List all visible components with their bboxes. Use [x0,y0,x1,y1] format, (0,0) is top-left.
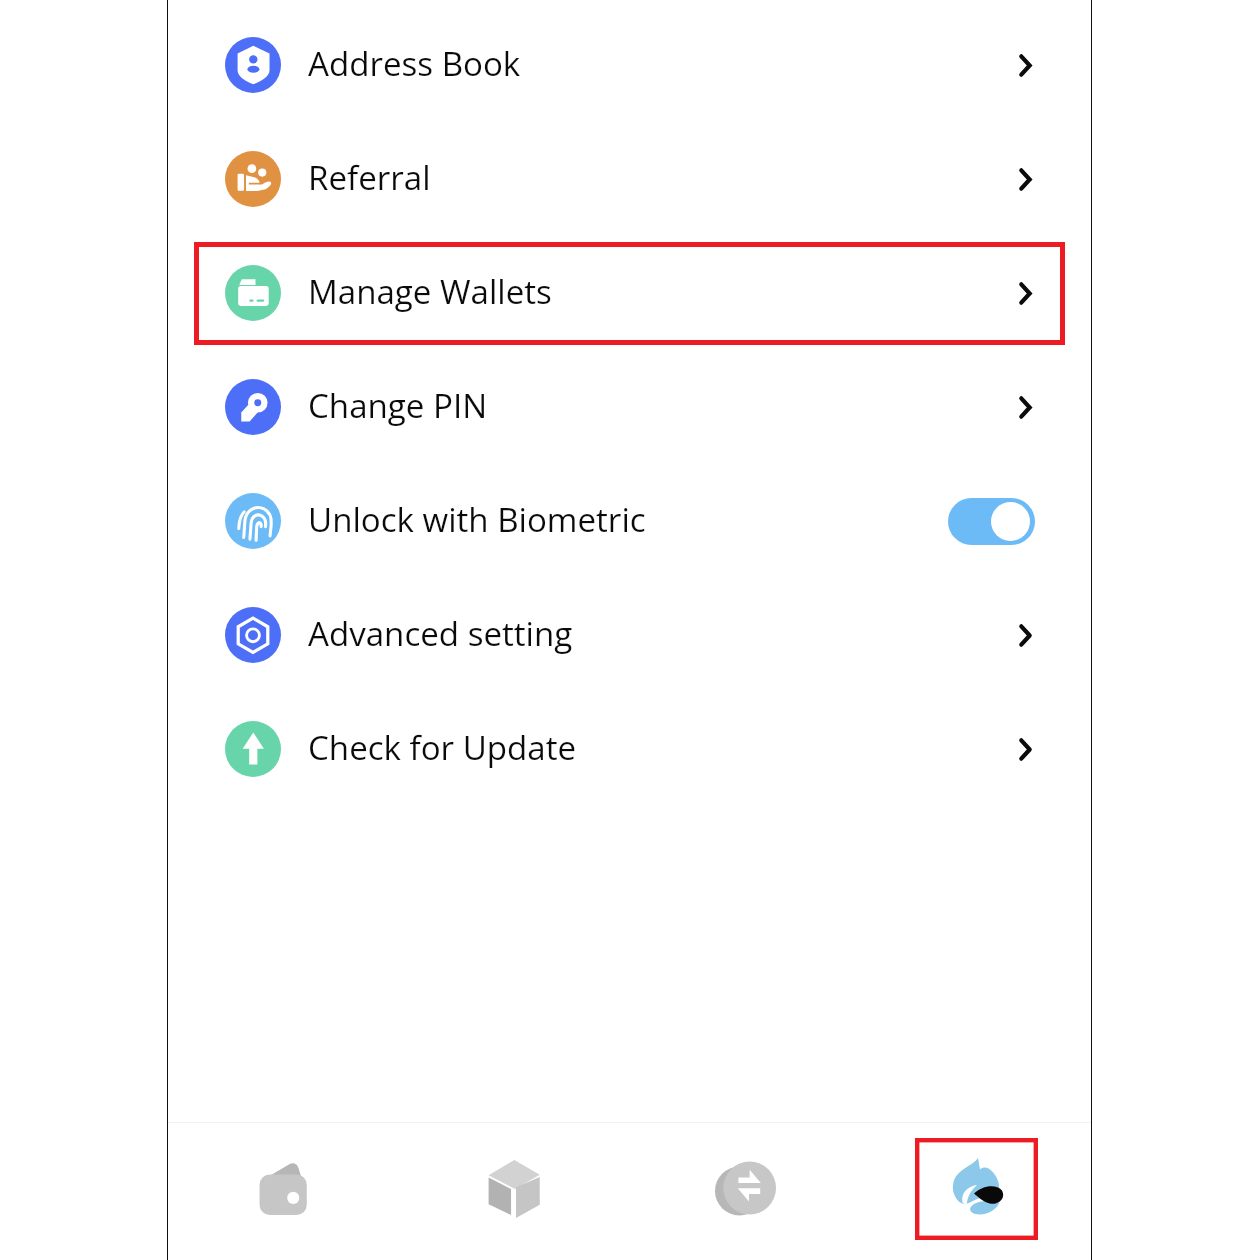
staticText: Change PIN [308,383,488,428]
button[interactable]: Check for Update [167,692,1092,806]
button[interactable]: Manage Wallets [167,236,1092,350]
button[interactable]: Wallet [167,1123,399,1260]
staticText: Referral [308,155,431,200]
button[interactable]: Unlock with Biometric [167,464,1092,578]
button[interactable]: Assets [399,1123,630,1260]
staticText: Check for Update [308,725,577,770]
staticText: Address Book [308,41,521,86]
staticText: Advanced setting [308,611,573,656]
button[interactable]: Referral [167,122,1092,236]
button[interactable]: Change PIN [167,350,1092,464]
button[interactable]: Address Book [167,8,1092,122]
button[interactable]: Profile [861,1123,1092,1260]
staticText: Manage Wallets [308,269,552,314]
button[interactable]: Toggle biometric [948,498,1035,545]
button[interactable]: Swap [630,1123,861,1260]
staticText: Unlock with Biometric [308,497,646,542]
button[interactable]: Advanced setting [167,578,1092,692]
